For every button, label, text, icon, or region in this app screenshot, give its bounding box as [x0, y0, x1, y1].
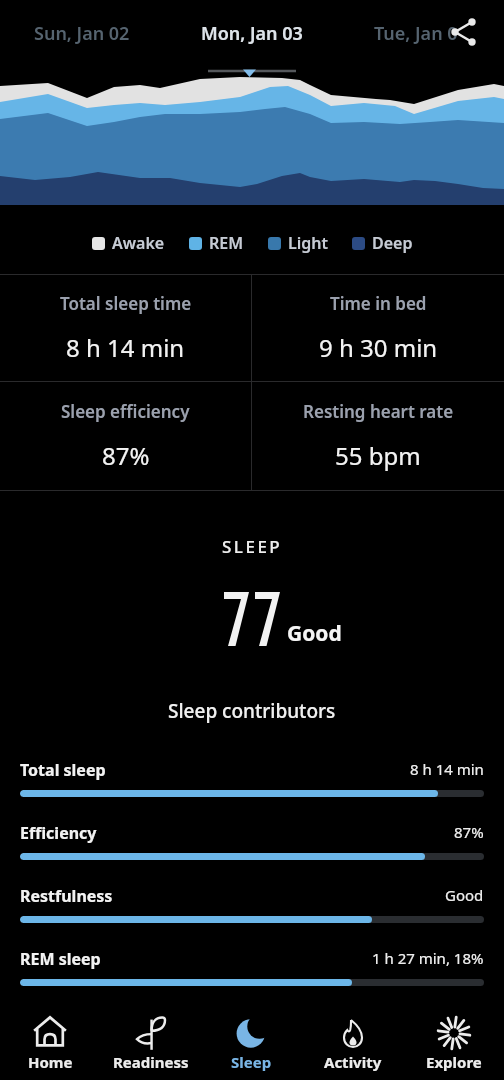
button[interactable]: Resting heart rate	[252, 382, 504, 490]
staticText: Mon, Jan 03	[201, 21, 303, 46]
button[interactable]: Efficiency	[20, 822, 484, 860]
staticText: Tue, Jan 0	[374, 21, 458, 46]
staticText: Good	[445, 885, 484, 905]
button[interactable]: REM sleep	[20, 948, 484, 986]
staticText: Total sleep time	[60, 292, 192, 315]
button[interactable]	[448, 17, 480, 49]
staticText: Efficiency	[20, 822, 97, 844]
staticText: 1 h 27 min, 18%	[372, 948, 484, 968]
staticText: 87%	[454, 822, 484, 842]
button[interactable]: Total sleep time	[0, 275, 251, 381]
staticText: Resting heart rate	[303, 400, 454, 423]
staticText: Sleep efficiency	[61, 400, 190, 423]
button[interactable]: Activity	[302, 1008, 403, 1080]
staticText: Home	[28, 1052, 73, 1072]
staticText: Readiness	[113, 1052, 189, 1072]
button[interactable]: Sun, Jan 02	[34, 21, 130, 46]
staticText: Deep	[372, 232, 413, 254]
button[interactable]: Tue, Jan 0	[374, 21, 458, 46]
button[interactable]: Home	[0, 1008, 100, 1080]
button[interactable]: Explore	[403, 1008, 504, 1080]
button[interactable]: Total sleep	[20, 759, 484, 797]
staticText: 8 h 14 min	[66, 331, 185, 364]
staticText: 9 h 30 min	[319, 331, 438, 364]
staticText: Sleep	[231, 1052, 272, 1072]
staticText: Sleep contributors	[168, 698, 336, 724]
button[interactable]: Sleep efficiency	[0, 382, 251, 490]
staticText: Light	[288, 232, 328, 254]
staticText: Restfulness	[20, 885, 113, 907]
staticText: Activity	[324, 1052, 382, 1072]
staticText: Sun, Jan 02	[34, 21, 130, 46]
button[interactable]: Time in bed	[252, 275, 504, 381]
staticText: SLEEP	[222, 535, 283, 558]
staticText: 8 h 14 min	[410, 759, 484, 779]
staticText: Total sleep	[20, 759, 106, 781]
staticText: 87%	[102, 439, 150, 472]
button[interactable]: Mon, Jan 03	[201, 21, 303, 46]
staticText: Good	[287, 619, 342, 648]
staticText: REM	[209, 232, 244, 254]
button[interactable]: Restfulness	[20, 885, 484, 923]
staticText: Explore	[426, 1052, 482, 1072]
staticText: REM sleep	[20, 948, 101, 970]
staticText: Time in bed	[330, 292, 427, 315]
staticText: 55 bpm	[335, 439, 421, 472]
staticText: Awake	[112, 232, 165, 254]
button[interactable]: Sleep	[201, 1008, 302, 1080]
button[interactable]: Readiness	[100, 1008, 201, 1080]
